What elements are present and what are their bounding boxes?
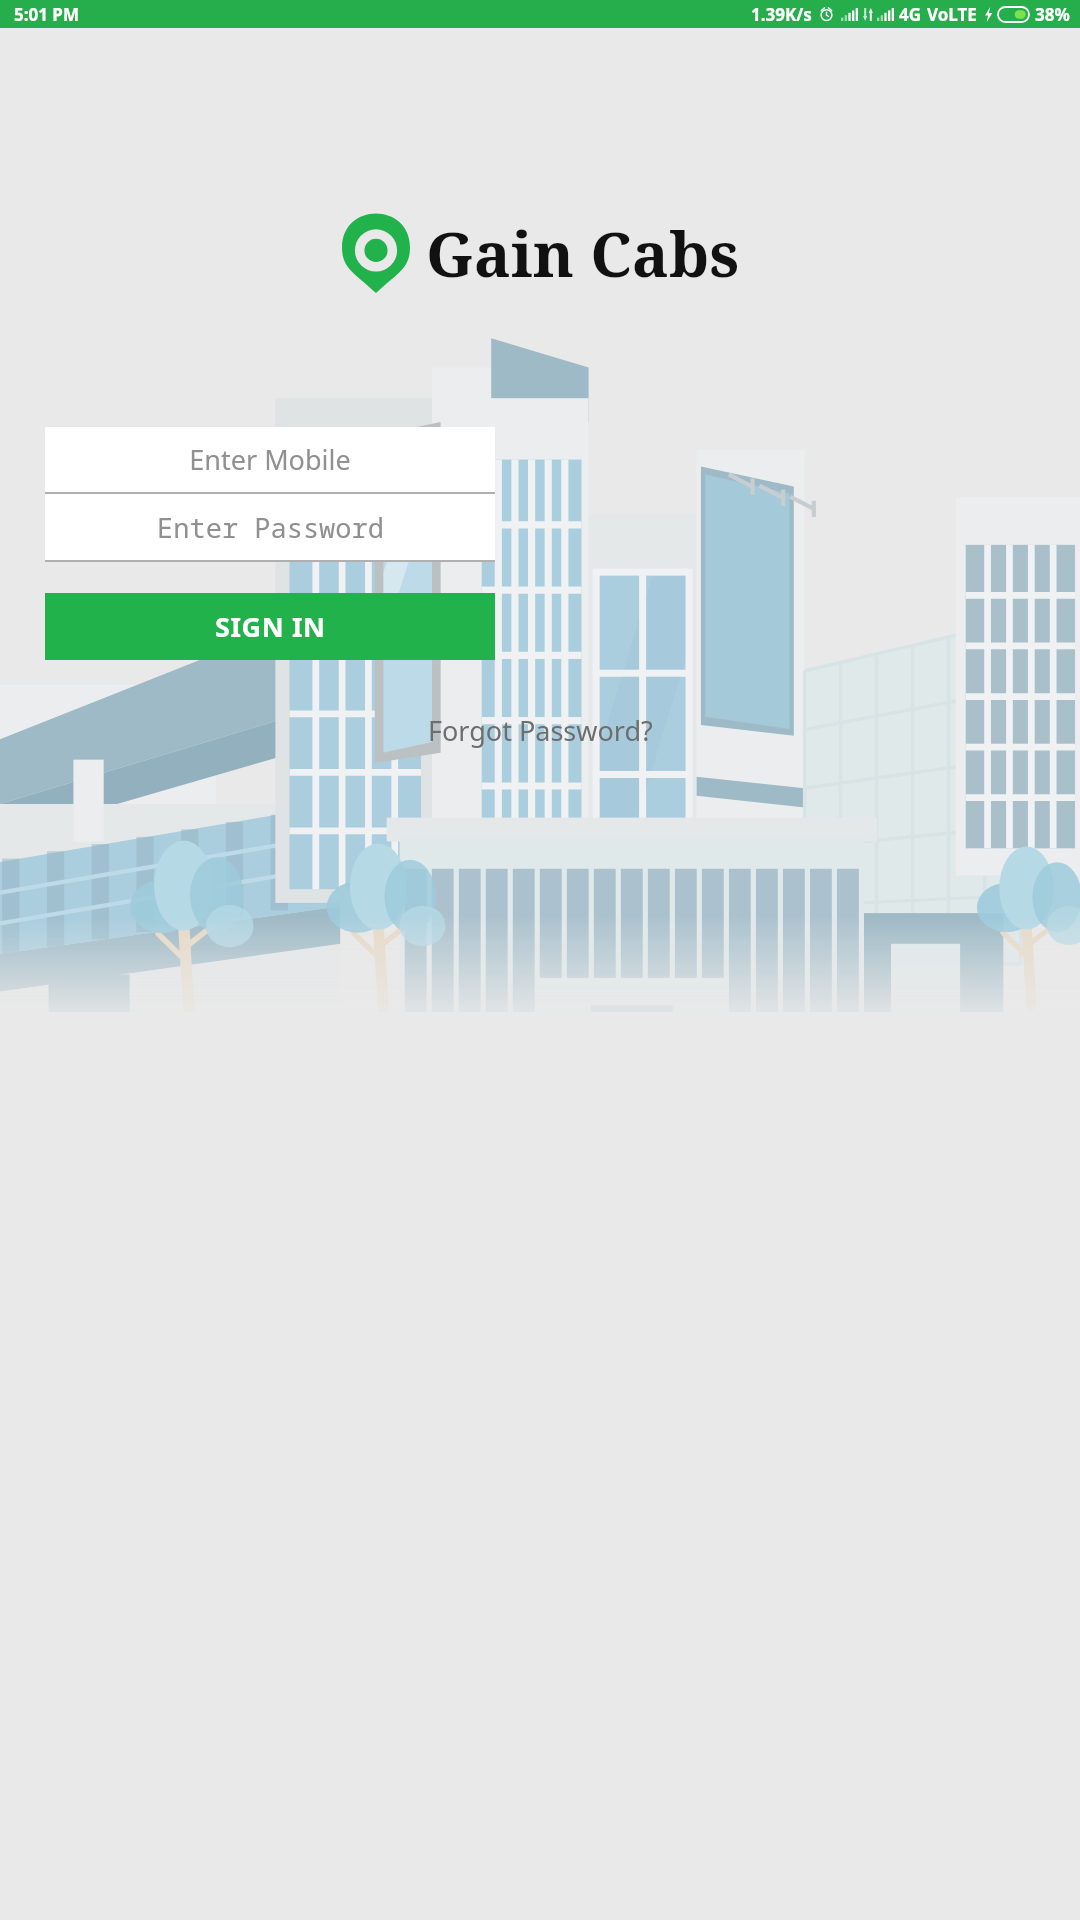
button[interactable]: Enter Password — [45, 494, 495, 560]
staticText: VoLTE — [927, 3, 977, 26]
button[interactable]: Forgot Password? — [428, 712, 653, 749]
staticText: 38% — [1035, 3, 1070, 26]
staticText: SIGN IN — [215, 608, 326, 645]
staticText: 1.39K/s — [751, 3, 812, 26]
staticText: 5:01 PM — [14, 3, 79, 26]
staticText: 4G — [899, 3, 922, 26]
other: Gain Cabs logo — [342, 213, 410, 293]
staticText: Enter Password — [157, 509, 384, 546]
staticText: Enter Mobile — [189, 441, 351, 478]
staticText: Gain Cabs — [426, 211, 739, 295]
button[interactable]: SIGN IN — [45, 593, 495, 660]
button[interactable]: Enter Mobile — [45, 427, 495, 492]
staticText: Forgot Password? — [428, 712, 653, 749]
